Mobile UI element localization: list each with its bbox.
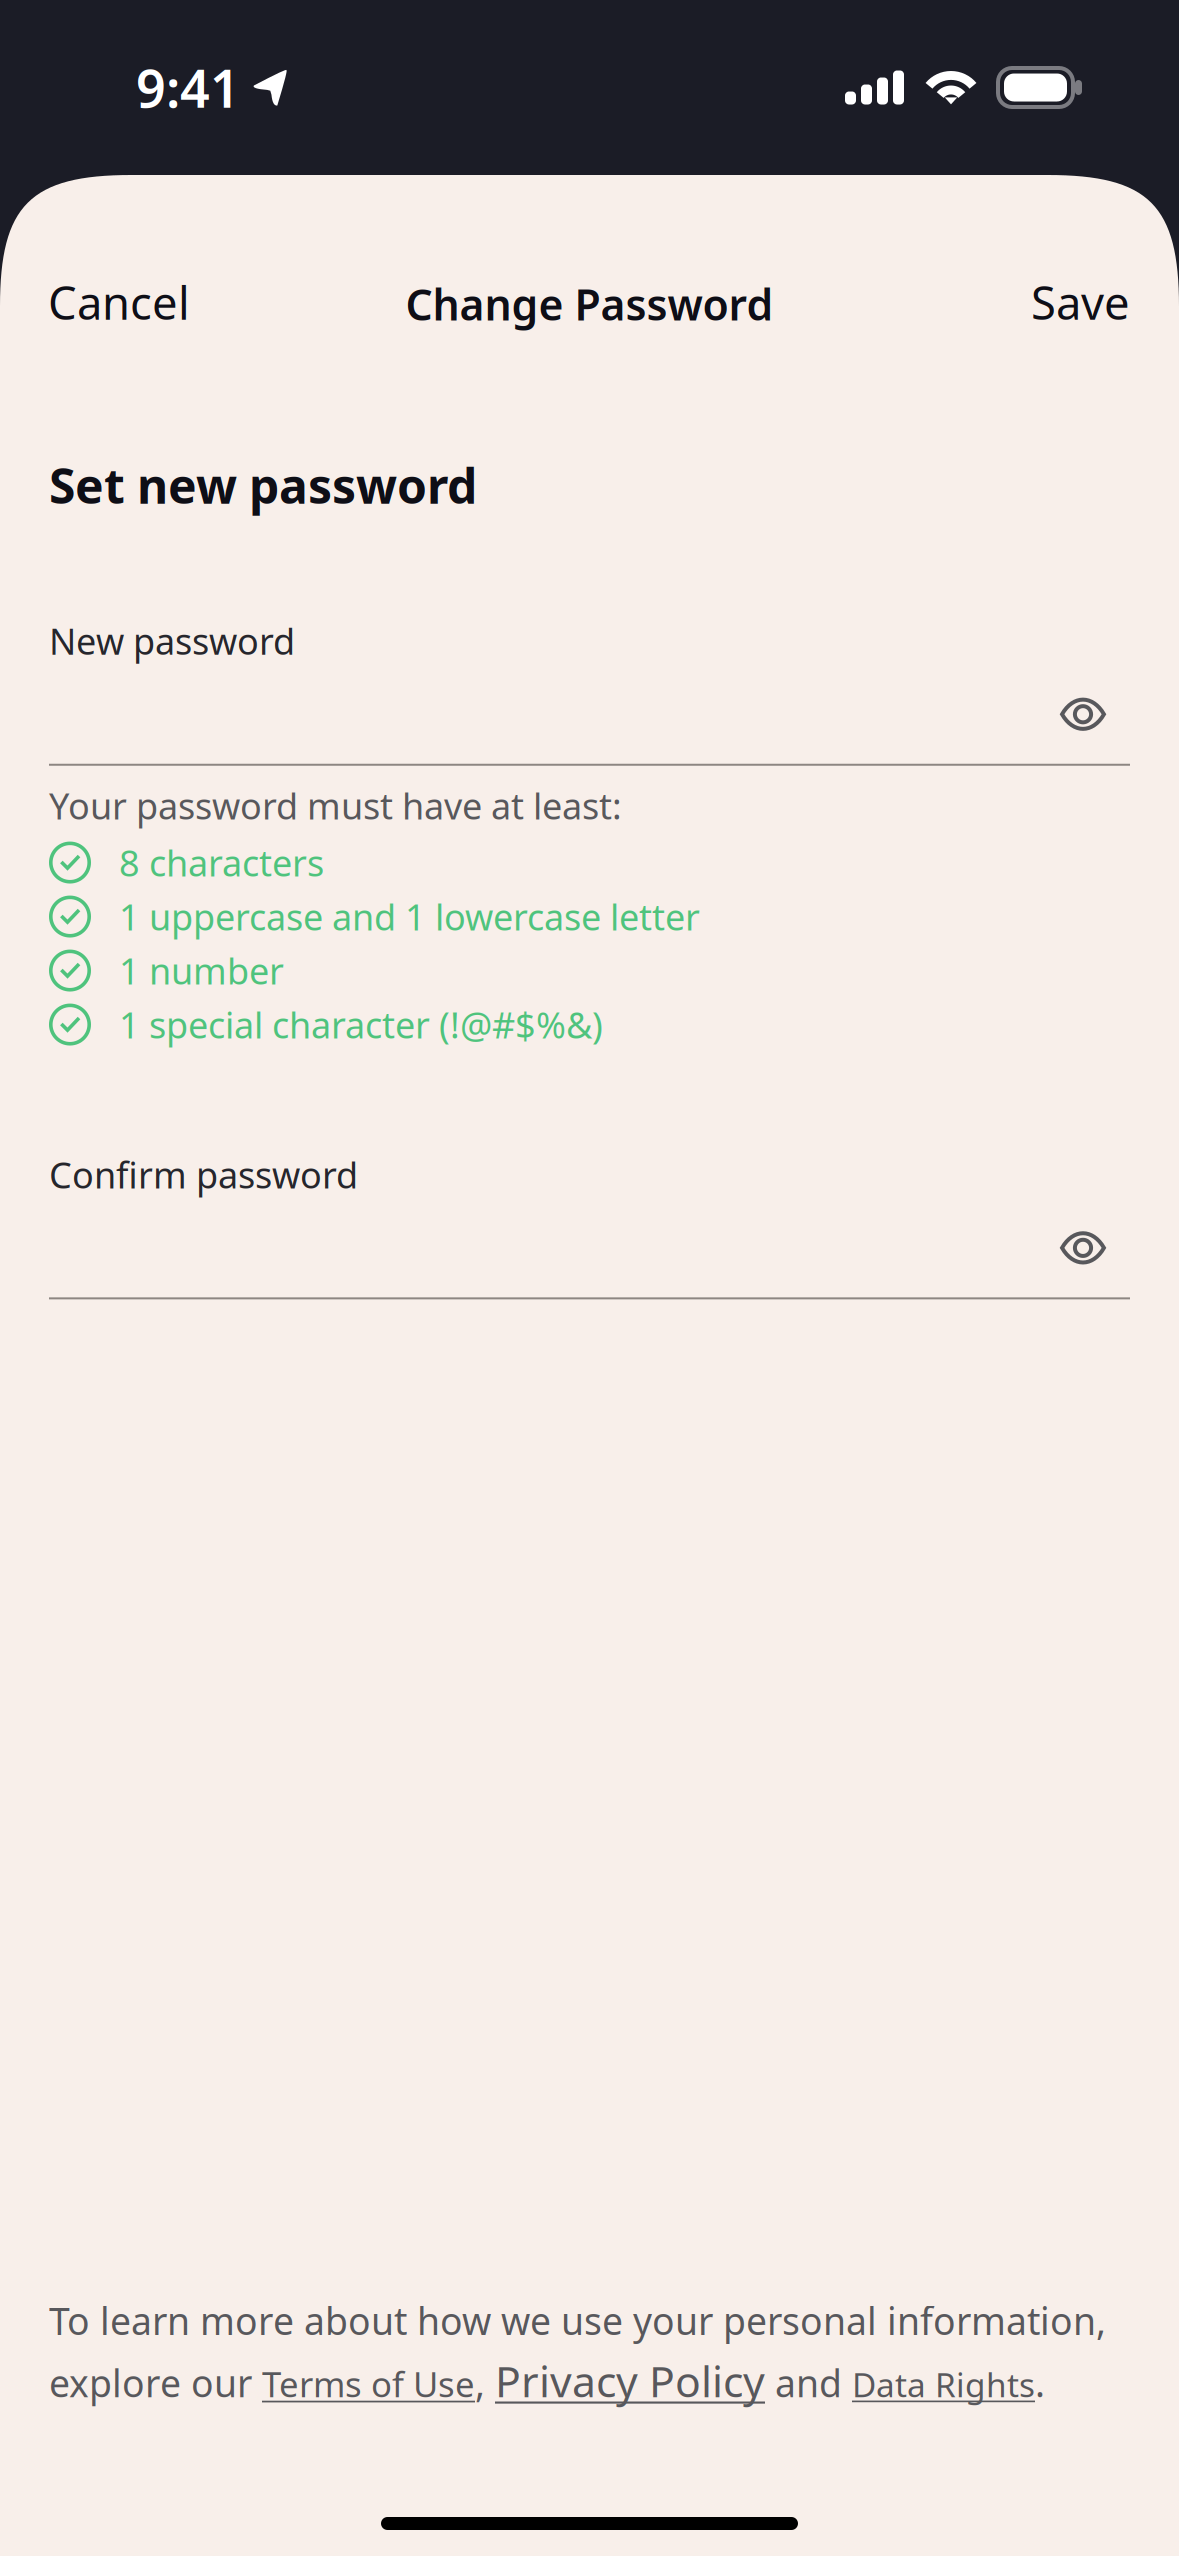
staticText: Cancel [48, 272, 190, 332]
staticText: explore our [49, 2358, 262, 2408]
staticText: and [765, 2358, 852, 2408]
button[interactable]: Terms of Use [262, 2361, 475, 2407]
staticText: 1 number [119, 947, 284, 994]
staticText: Privacy Policy [495, 2352, 765, 2409]
button[interactable]: Save [1001, 254, 1130, 350]
staticText: Change Password [405, 275, 773, 332]
button[interactable]: Privacy Policy [495, 2352, 765, 2409]
staticText: Confirm password [49, 1151, 358, 1198]
staticText: 1 uppercase and 1 lowercase letter [119, 893, 700, 940]
staticText: , [475, 2358, 495, 2408]
staticText: Data Rights [852, 2362, 1035, 2406]
button[interactable]: Data Rights [852, 2362, 1035, 2406]
staticText: 8 characters [119, 839, 324, 886]
staticText: To learn more about how we use your pers… [49, 2296, 1106, 2345]
staticText: 1 special character (!@#$%&) [119, 1001, 603, 1048]
staticText: New password [49, 617, 295, 665]
staticText: 9:41 [136, 53, 240, 122]
staticText: . [1035, 2358, 1045, 2408]
staticText: Save [1031, 272, 1130, 332]
staticText: Terms of Use [262, 2361, 475, 2407]
button[interactable]: Cancel [48, 254, 220, 350]
staticText: Your password must have at least: [49, 782, 622, 829]
staticText: Set new password [49, 453, 477, 517]
button[interactable]: Show password [1032, 664, 1130, 764]
button[interactable]: Show password [1032, 1198, 1130, 1298]
